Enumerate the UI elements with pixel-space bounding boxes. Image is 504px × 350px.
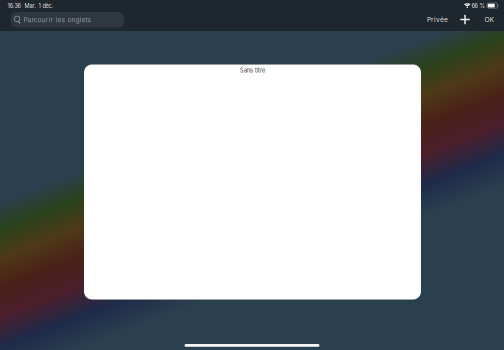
staticText: OK	[484, 15, 493, 24]
button[interactable]: OK	[480, 12, 498, 27]
staticText: 16:36	[7, 3, 20, 9]
staticText: Parcourir les onglets	[24, 16, 92, 24]
staticText: 66 %	[472, 3, 485, 9]
button[interactable]: Privée	[424, 12, 450, 27]
button[interactable]: Parcourir les onglets	[11, 12, 124, 27]
button[interactable]: Sans titre	[84, 64, 421, 299]
button[interactable]: Nouvel onglet	[456, 12, 474, 27]
staticText: Sans titre	[240, 67, 265, 74]
staticText: Privée	[427, 15, 448, 24]
staticText: Mar. 1 déc.	[24, 3, 53, 9]
